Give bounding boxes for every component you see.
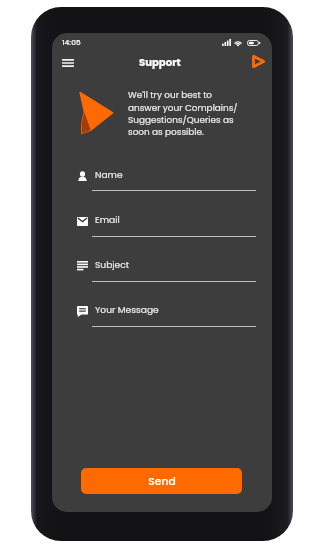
staticText: Subject bbox=[95, 258, 130, 271]
staticText: Email bbox=[95, 213, 120, 226]
staticText: Name bbox=[95, 168, 123, 181]
button[interactable]: App logo bbox=[248, 51, 269, 72]
staticText: Support bbox=[139, 55, 181, 69]
staticText: Your Message bbox=[95, 303, 159, 316]
button[interactable]: Email bbox=[77, 213, 257, 237]
button[interactable]: Menu bbox=[56, 51, 80, 75]
button[interactable]: Send bbox=[81, 468, 242, 494]
staticText: We'll try our best to answer your Compla… bbox=[128, 89, 238, 138]
button[interactable]: Name bbox=[77, 168, 257, 192]
staticText: Send bbox=[148, 474, 176, 489]
button[interactable]: Subject bbox=[77, 258, 257, 282]
staticText: 14:05 bbox=[62, 37, 81, 47]
button[interactable]: Your Message bbox=[77, 303, 257, 327]
